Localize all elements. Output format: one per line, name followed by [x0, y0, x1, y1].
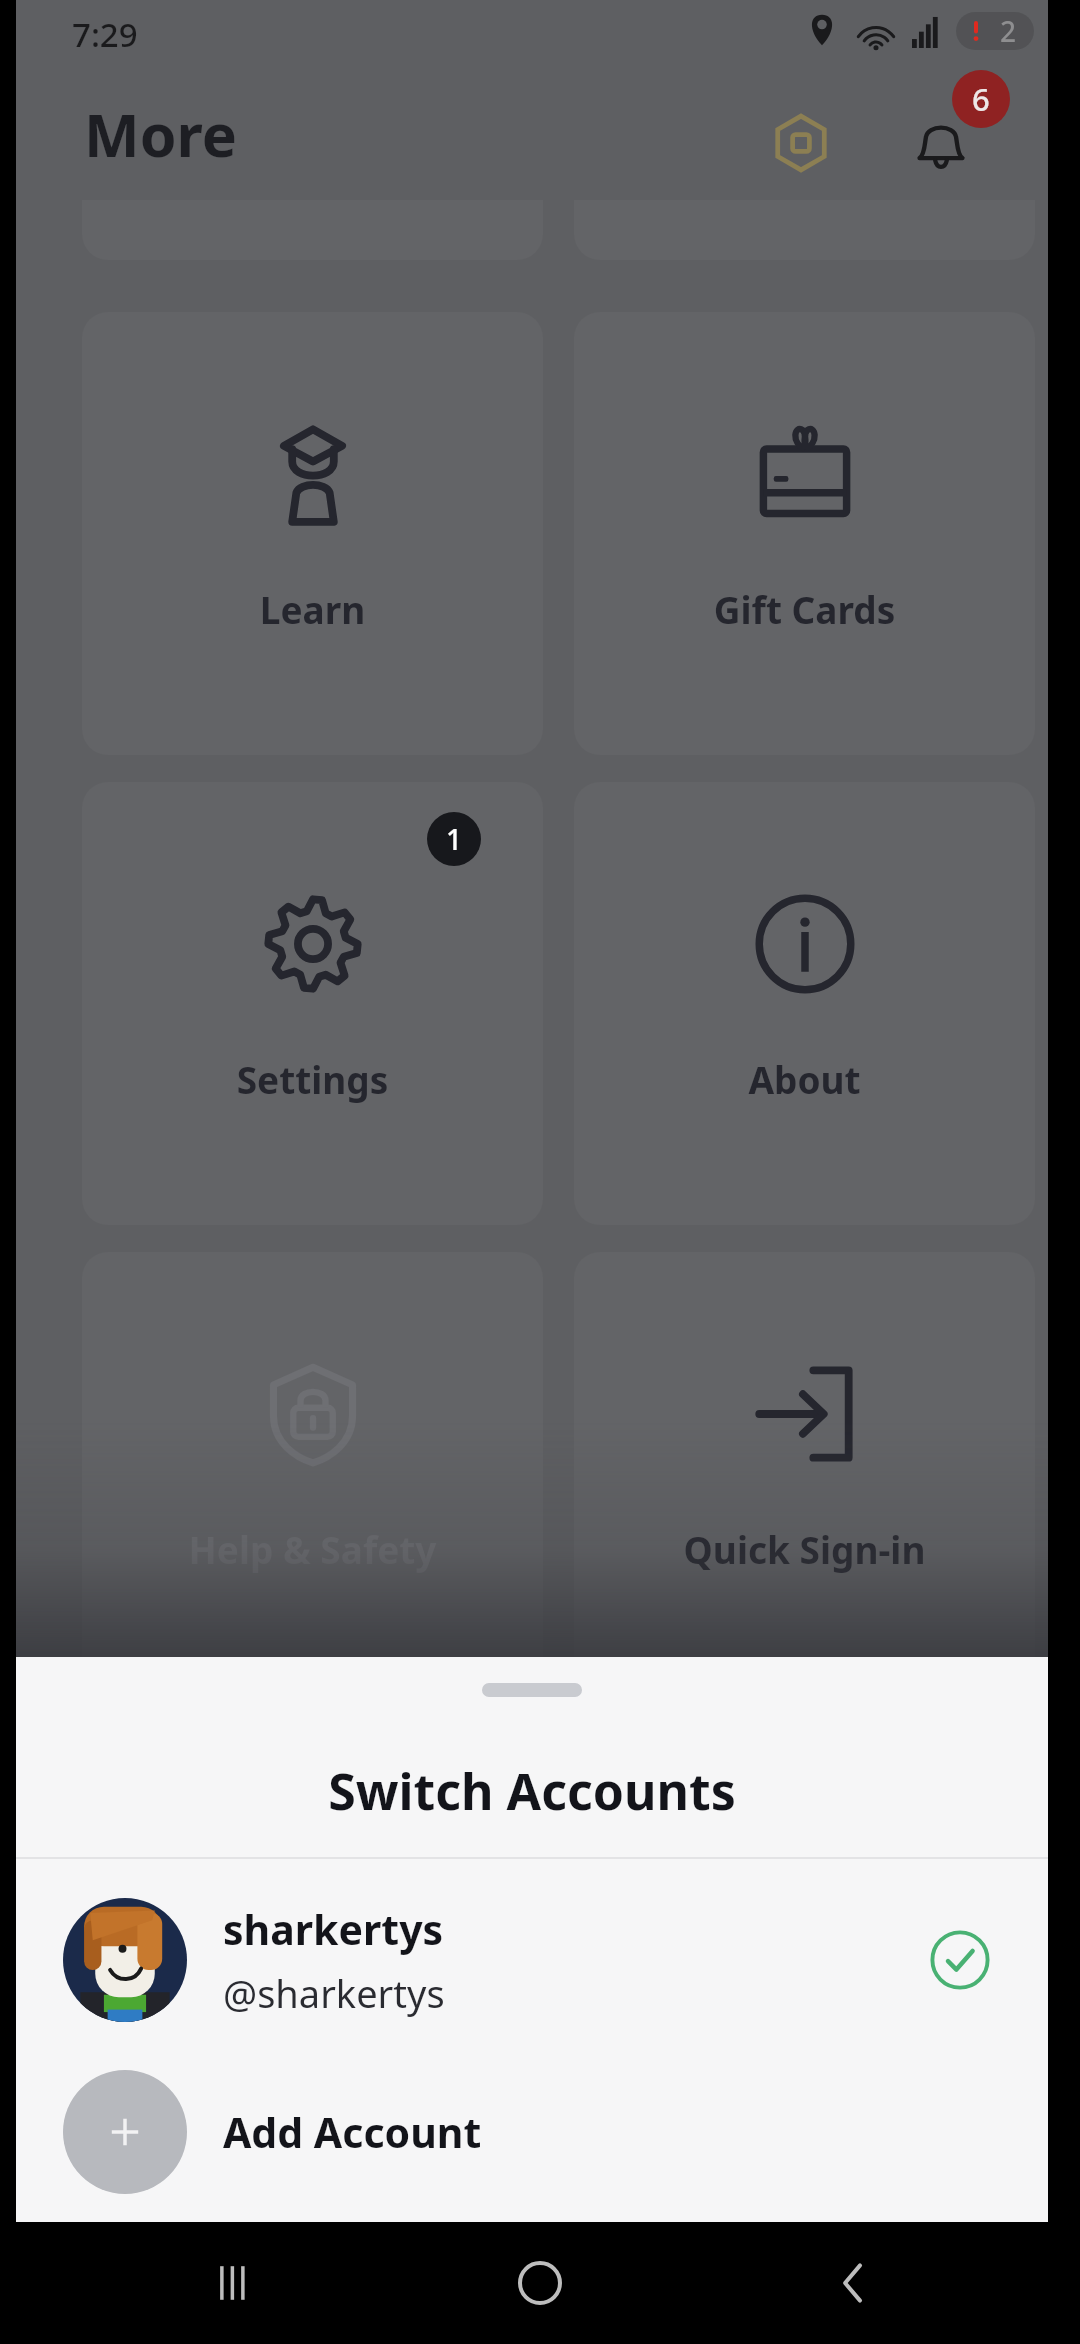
button[interactable]: Notifications: [902, 104, 980, 182]
button[interactable]: Quick Sign-in: [574, 1252, 1035, 1695]
button[interactable]: sharkertys: [16, 1871, 1048, 2049]
button[interactable]: Gift Cards: [574, 312, 1035, 755]
staticText: 2: [1000, 12, 1017, 50]
button[interactable]: Premium: [762, 104, 840, 182]
staticText: Gift Cards: [574, 584, 1035, 634]
button[interactable]: Settings: [82, 782, 543, 1225]
staticText: About: [574, 1054, 1035, 1104]
staticText: 7:29: [72, 12, 138, 57]
staticText: More: [84, 94, 237, 174]
staticText: Learn: [82, 584, 543, 634]
staticText: @sharkertys: [223, 1967, 445, 2019]
staticText: Quick Sign-in: [574, 1524, 1035, 1574]
staticText: sharkertys: [223, 1901, 444, 1957]
staticText: 6: [972, 78, 990, 120]
staticText: Help & Safety: [82, 1524, 543, 1574]
staticText: Settings: [82, 1054, 543, 1104]
staticText: Add Account: [223, 2104, 482, 2160]
button[interactable]: Learn: [82, 312, 543, 755]
button[interactable]: Help & Safety: [82, 1252, 543, 1695]
button[interactable]: Back: [798, 2228, 908, 2338]
button[interactable]: About: [574, 782, 1035, 1225]
button[interactable]: Add Account: [16, 2057, 1048, 2207]
button[interactable]: Home: [485, 2228, 595, 2338]
staticText: Switch Accounts: [16, 1757, 1048, 1825]
staticText: 1: [446, 820, 463, 858]
button[interactable]: Recents: [180, 2228, 290, 2338]
